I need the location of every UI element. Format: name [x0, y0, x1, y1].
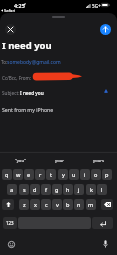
button[interactable]: h — [63, 184, 73, 195]
button[interactable]: t — [46, 169, 56, 180]
button[interactable]: m — [86, 199, 96, 210]
button[interactable]: s — [19, 184, 29, 195]
staticText: l — [101, 186, 103, 194]
staticText: e — [27, 171, 31, 179]
staticText: d — [33, 186, 37, 194]
button[interactable]: g — [52, 184, 62, 195]
button[interactable]: q — [2, 169, 12, 180]
button[interactable]: r — [35, 169, 45, 180]
button[interactable]: f — [41, 184, 51, 195]
staticText: n — [77, 201, 81, 209]
staticText: "you" — [15, 158, 26, 164]
staticText: your — [55, 158, 64, 164]
button[interactable]: l — [97, 184, 107, 195]
button[interactable]: p — [102, 169, 112, 180]
staticText: Cc/Bcc, From: — [2, 75, 32, 81]
staticText: g — [55, 186, 59, 194]
button[interactable]: yours — [79, 154, 117, 167]
staticText: Sent from my iPhone — [2, 106, 54, 113]
button[interactable]: c — [41, 199, 51, 210]
staticText: somebody@gmail.com — [7, 59, 61, 66]
staticText: 4:25 — [14, 2, 25, 9]
staticText: Safari — [4, 8, 16, 14]
staticText: u — [72, 171, 76, 179]
staticText: q — [5, 171, 9, 179]
staticText: z — [23, 201, 26, 209]
staticText: v — [56, 201, 59, 209]
button[interactable]: Dictate — [100, 239, 110, 249]
button[interactable]: e — [24, 169, 34, 180]
staticText: s — [23, 186, 26, 194]
button[interactable]: Emoji — [6, 239, 16, 249]
button[interactable]: w — [13, 169, 23, 180]
staticText: y — [62, 171, 65, 179]
button[interactable]: Expand — [102, 87, 109, 94]
button[interactable]: Return — [92, 217, 113, 229]
button[interactable]: Close — [5, 24, 16, 35]
staticText: I need you — [20, 90, 44, 96]
staticText: m — [88, 201, 94, 209]
staticText: f — [45, 186, 47, 194]
staticText: w — [16, 171, 21, 179]
button[interactable]: k — [86, 184, 96, 195]
button[interactable]: d — [30, 184, 40, 195]
staticText: r — [39, 171, 42, 179]
staticText: yours — [93, 158, 104, 164]
button[interactable]: o — [91, 169, 101, 180]
staticText: i — [84, 171, 86, 179]
button[interactable]: "you" — [1, 154, 39, 167]
button[interactable]: x — [30, 199, 40, 210]
button[interactable]: Backspace — [101, 199, 113, 210]
staticText: p — [105, 171, 109, 179]
button[interactable]: n — [74, 199, 84, 210]
button[interactable]: j — [74, 184, 84, 195]
button[interactable]: your — [40, 154, 78, 167]
button[interactable]: a — [7, 184, 17, 195]
button[interactable]: v — [52, 199, 62, 210]
button[interactable]: Numbers — [3, 217, 17, 229]
staticText: o — [94, 171, 98, 179]
staticText: t — [50, 171, 53, 179]
staticText: k — [90, 186, 93, 194]
staticText: 5G+ — [92, 3, 101, 9]
staticText: c — [45, 201, 48, 209]
staticText: To: — [1, 59, 8, 65]
staticText: Subject: — [2, 90, 20, 96]
staticText: h — [66, 186, 70, 194]
staticText: a — [10, 186, 14, 194]
button[interactable]: Shift — [2, 199, 14, 210]
button[interactable]: b — [63, 199, 73, 210]
button[interactable]: y — [58, 169, 68, 180]
button[interactable]: u — [69, 169, 79, 180]
button[interactable]: Send — [100, 24, 111, 35]
staticText: x — [34, 201, 37, 209]
button[interactable]: i — [80, 169, 90, 180]
staticText: j — [78, 186, 80, 194]
staticText: b — [66, 201, 70, 209]
staticText: 123 — [6, 220, 14, 226]
button[interactable]: z — [19, 199, 29, 210]
staticText: I need you — [2, 39, 52, 52]
